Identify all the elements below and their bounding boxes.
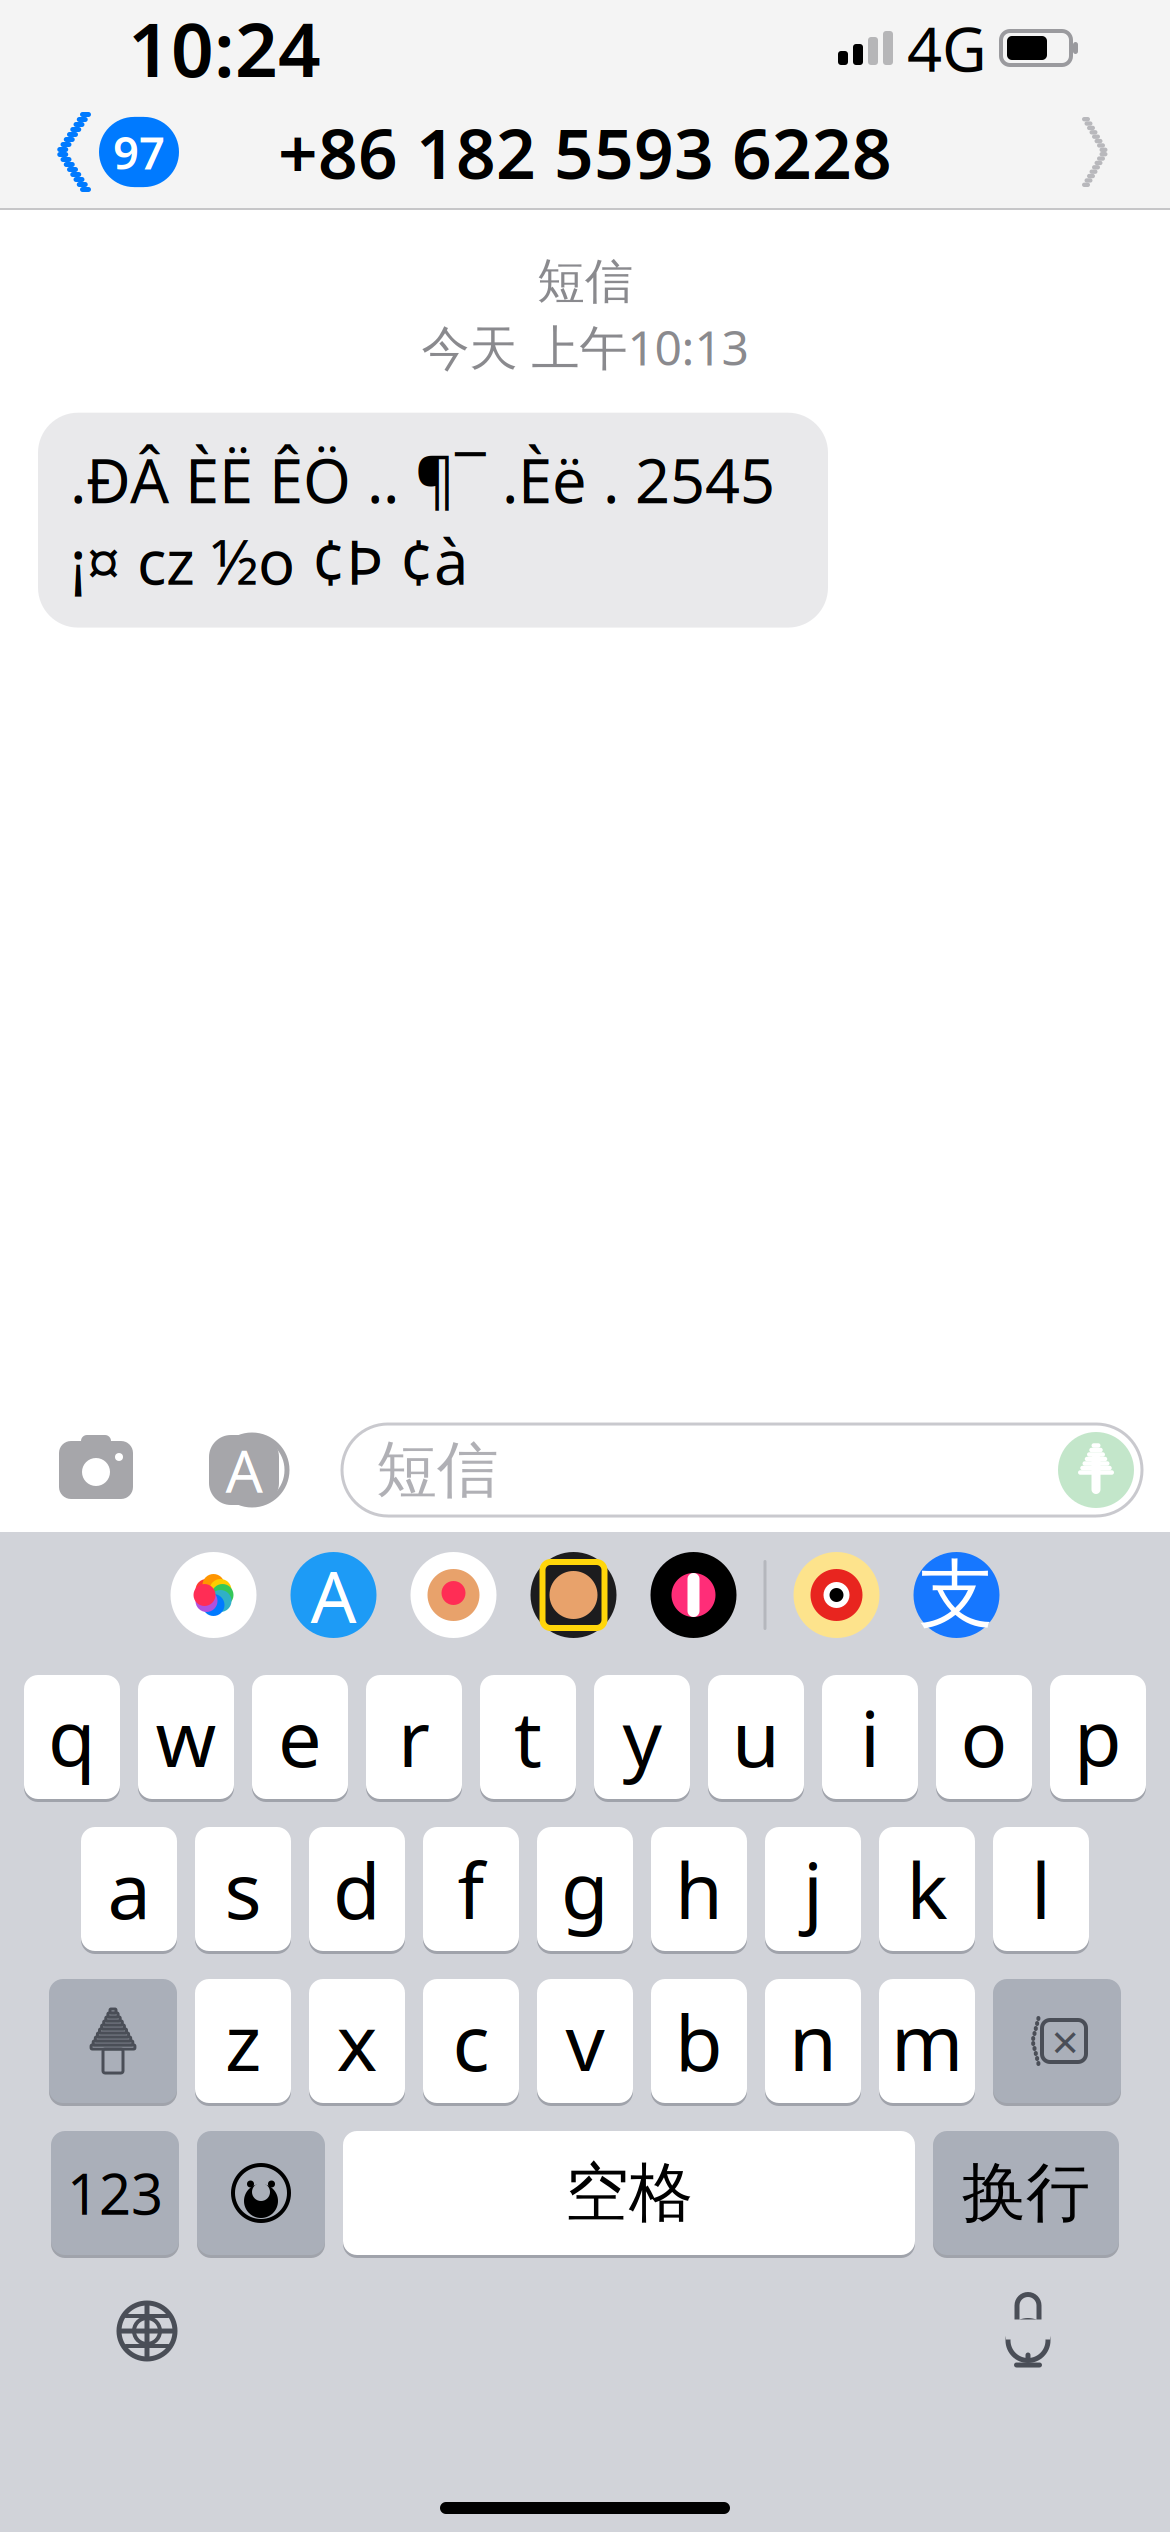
button[interactable]: Photos — [153, 1535, 273, 1655]
staticText: r — [398, 1686, 430, 1788]
button[interactable] — [197, 2128, 325, 2258]
staticText: n — [789, 1990, 837, 2092]
staticText: d — [333, 1838, 381, 1940]
button[interactable]: 空格 — [343, 2128, 915, 2258]
button[interactable]: e — [252, 1672, 348, 1802]
button[interactable]: b — [651, 1976, 747, 2106]
button[interactable] — [49, 1976, 177, 2106]
staticText: l — [1031, 1838, 1051, 1940]
button[interactable]: Contact details — [1056, 115, 1136, 189]
button[interactable]: Digital Touch — [633, 1535, 753, 1655]
button[interactable]: Alipay — [896, 1535, 1016, 1655]
button[interactable]: m — [879, 1976, 975, 2106]
staticText: k — [906, 1838, 947, 1940]
button[interactable]: w — [138, 1672, 234, 1802]
staticText: m — [891, 1990, 963, 2092]
button[interactable]: a — [81, 1824, 177, 1954]
button[interactable]: × — [993, 1976, 1121, 2106]
staticText: 10:24 — [128, 0, 321, 98]
button[interactable]: App Store — [188, 1433, 300, 1507]
button[interactable]: r — [366, 1672, 462, 1802]
staticText: × — [1051, 2009, 1078, 2073]
staticText: 空格 — [565, 2154, 693, 2232]
staticText: i — [860, 1686, 880, 1788]
staticText: u — [732, 1686, 780, 1788]
button[interactable]: p — [1050, 1672, 1146, 1802]
button[interactable]: k — [879, 1824, 975, 1954]
button[interactable]: j — [765, 1824, 861, 1954]
staticText: 支 — [919, 1549, 994, 1641]
staticText: A — [310, 1547, 356, 1643]
staticText: 短信 — [376, 1432, 498, 1508]
staticText: q — [48, 1686, 96, 1788]
staticText: 今天 上午10:13 — [421, 315, 748, 379]
staticText: 短信 — [537, 252, 633, 311]
staticText: s — [224, 1838, 261, 1940]
button[interactable]: s — [195, 1824, 291, 1954]
staticText: 123 — [67, 2156, 163, 2230]
button[interactable]: o — [936, 1672, 1032, 1802]
staticText: y — [622, 1686, 661, 1788]
button[interactable]: d — [309, 1824, 405, 1954]
staticText: A — [225, 1431, 262, 1509]
button[interactable]: 换行 — [933, 2128, 1119, 2258]
button[interactable]: i — [822, 1672, 918, 1802]
button[interactable]: q — [24, 1672, 120, 1802]
button[interactable]: Camera — [44, 1433, 148, 1507]
staticText: e — [278, 1686, 322, 1788]
staticText: x — [336, 1990, 377, 2092]
button[interactable]: g — [537, 1824, 633, 1954]
staticText: +86 182 5593 6228 — [278, 106, 892, 198]
staticText: t — [514, 1686, 542, 1788]
button[interactable]: v — [537, 1976, 633, 2106]
staticText: a — [107, 1838, 150, 1940]
staticText: c — [452, 1990, 489, 2092]
button[interactable]: y — [594, 1672, 690, 1802]
button[interactable]: Next keyboard — [92, 2284, 202, 2378]
button[interactable]: Stickers — [393, 1535, 513, 1655]
staticText: 4G — [907, 7, 987, 89]
button[interactable]: n — [765, 1976, 861, 2106]
button[interactable]: l — [993, 1824, 1089, 1954]
button[interactable]: z — [195, 1976, 291, 2106]
staticText: .ÐÂ ÈË ÊÖ .. ¶¯ .Èë . 2545 ¡¤ cz ½o ¢Þ ¢… — [70, 439, 775, 602]
button[interactable]: App Store — [273, 1535, 393, 1655]
staticText: v — [565, 1990, 604, 2092]
button[interactable]: t — [480, 1672, 576, 1802]
button[interactable]: Weibo — [776, 1535, 896, 1655]
staticText: g — [561, 1838, 609, 1940]
button[interactable]: 123 — [51, 2128, 179, 2258]
staticText: z — [225, 1990, 261, 2092]
staticText: f — [457, 1838, 484, 1940]
staticText: 换行 — [962, 2154, 1090, 2232]
staticText: b — [675, 1990, 723, 2092]
button[interactable]: Dictation — [980, 2284, 1076, 2378]
button[interactable]: Back to Messages, 97 unread — [34, 103, 199, 201]
button[interactable]: c — [423, 1976, 519, 2106]
staticText: j — [803, 1838, 823, 1940]
staticText: p — [1074, 1686, 1122, 1788]
button[interactable]: Memoji — [513, 1535, 633, 1655]
staticText: 97 — [113, 122, 165, 182]
staticText: h — [675, 1838, 723, 1940]
staticText: o — [960, 1686, 1007, 1788]
button[interactable]: f — [423, 1824, 519, 1954]
button[interactable]: h — [651, 1824, 747, 1954]
staticText: w — [155, 1686, 216, 1788]
button[interactable]: Send — [1058, 1432, 1134, 1508]
button[interactable]: u — [708, 1672, 804, 1802]
button[interactable]: x — [309, 1976, 405, 2106]
